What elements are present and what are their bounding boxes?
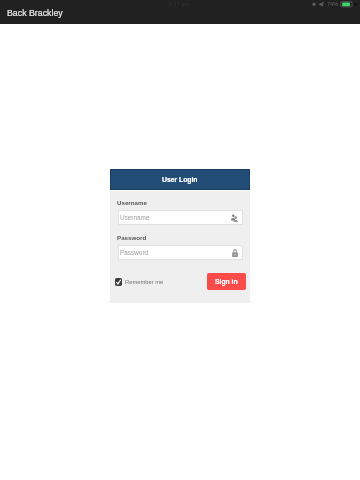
button[interactable]: Password: [118, 245, 243, 260]
staticText: Sign in: [215, 278, 238, 286]
staticText: Password: [120, 249, 149, 256]
button[interactable]: Username: [118, 210, 243, 225]
other: Password: [232, 249, 238, 257]
staticText: Password: [117, 234, 147, 241]
staticText: 5:17 pm: [169, 1, 190, 7]
button[interactable]: Back Brackley: [7, 8, 63, 18]
staticText: 74%: [327, 1, 339, 7]
staticText: User Login: [162, 176, 198, 184]
staticText: Username: [117, 199, 147, 206]
other: User: [231, 214, 238, 222]
button[interactable]: Remember me: [114, 277, 168, 288]
staticText: Username: [120, 214, 150, 221]
staticText: Remember me: [125, 279, 164, 285]
button[interactable]: Sign in: [207, 273, 246, 290]
